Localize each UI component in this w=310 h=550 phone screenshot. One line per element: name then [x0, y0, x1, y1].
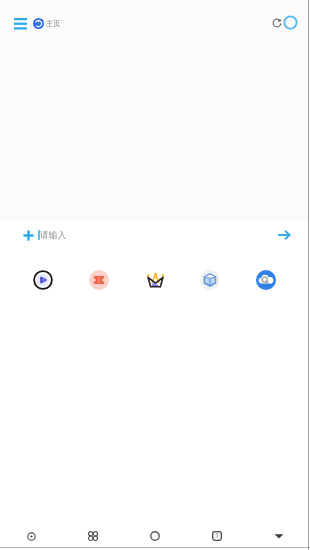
button[interactable]: Coupon — [83, 264, 115, 296]
button[interactable]: Video — [27, 264, 59, 296]
other: Site logo — [33, 18, 44, 29]
button[interactable]: More — [254, 522, 304, 550]
button[interactable]: Go — [272, 223, 296, 247]
button[interactable]: Cloud search — [250, 264, 282, 296]
staticText: 1 — [215, 531, 220, 541]
button[interactable]: Refresh — [266, 12, 287, 33]
button[interactable]: Cube — [194, 264, 226, 296]
button[interactable]: Home — [130, 522, 180, 550]
button[interactable]: Profile — [283, 15, 298, 30]
button[interactable]: Apps — [68, 522, 118, 550]
button[interactable]: History — [6, 522, 56, 550]
button[interactable]: Rewards — [139, 264, 171, 296]
staticText: 请输入 — [40, 230, 67, 241]
button[interactable]: Tabs — [192, 522, 242, 550]
button[interactable]: Menu — [7, 11, 34, 37]
staticText: 主页 — [46, 19, 61, 28]
